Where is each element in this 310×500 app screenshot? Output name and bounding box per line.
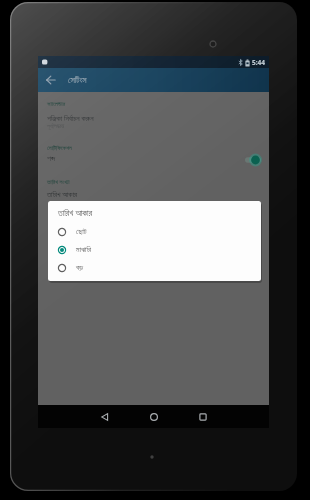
staticText: সূর্যসিদ্ধান্ত (47, 123, 65, 129)
button[interactable] (186, 405, 220, 428)
staticText: 5:44 (252, 58, 265, 67)
staticText: শব্দ (47, 155, 56, 163)
button[interactable] (38, 108, 269, 130)
button[interactable] (88, 405, 122, 428)
staticText: নোটিফিকেশন (47, 145, 72, 151)
button[interactable] (38, 150, 269, 168)
button[interactable]: ছোট (48, 223, 261, 241)
button[interactable]: মাঝারি (48, 241, 261, 259)
button[interactable] (137, 405, 171, 428)
button[interactable] (38, 186, 269, 204)
staticText: তারিখ আকার (47, 189, 78, 199)
staticText: ছোট (76, 228, 87, 236)
staticText: তারিখ সংখ্যা (47, 178, 70, 186)
button[interactable] (242, 154, 264, 166)
staticText: মাঝারি (76, 246, 91, 254)
staticText: বড় (76, 264, 84, 272)
staticText: পঞ্জিকা নির্বাচন করুন (47, 113, 94, 123)
button[interactable]: বড় (48, 259, 261, 277)
staticText: ক্যালেন্ডার (47, 101, 65, 107)
button[interactable] (38, 68, 64, 92)
staticText: সেটিংস (68, 76, 87, 85)
staticText: তারিখ আকার (58, 207, 93, 219)
